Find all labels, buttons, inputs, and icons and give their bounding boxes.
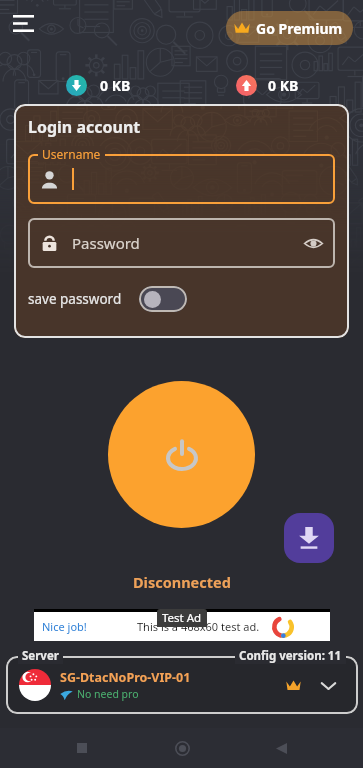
button[interactable]: Password xyxy=(28,218,335,268)
staticText: 0 KB xyxy=(268,76,299,95)
button[interactable]: Menu xyxy=(3,3,43,43)
button[interactable]: SG-DtacNoPro-VIP-01 xyxy=(6,656,358,714)
button[interactable]: Home xyxy=(164,730,200,766)
staticText: save password xyxy=(28,290,122,308)
staticText: Test Ad xyxy=(162,610,202,626)
staticText: No need pro xyxy=(77,687,139,701)
staticText: Disconnected xyxy=(133,572,231,592)
staticText: Password xyxy=(72,233,140,253)
staticText: Server xyxy=(22,648,59,664)
staticText: Nice job! xyxy=(42,619,87,634)
button[interactable] xyxy=(28,154,335,204)
staticText: This is a 468x60 test ad. xyxy=(137,619,260,634)
staticText: Username xyxy=(42,146,101,162)
button[interactable]: Back xyxy=(263,730,299,766)
button[interactable]: Show password xyxy=(301,231,325,255)
button[interactable]: Download config xyxy=(284,513,334,563)
staticText: 0 KB xyxy=(100,76,131,95)
staticText: Go Premium xyxy=(256,19,343,38)
staticText: Login account xyxy=(28,116,141,138)
button[interactable]: Recents xyxy=(64,730,100,766)
staticText: SG-DtacNoPro-VIP-01 xyxy=(60,669,191,686)
button[interactable]: Nice job! xyxy=(34,612,330,641)
button[interactable]: Go Premium xyxy=(226,11,353,45)
button[interactable]: save password toggle xyxy=(139,286,187,312)
staticText: Config version: 11 xyxy=(239,648,342,664)
button[interactable]: Connect xyxy=(108,381,255,528)
other: Expand xyxy=(320,677,337,694)
